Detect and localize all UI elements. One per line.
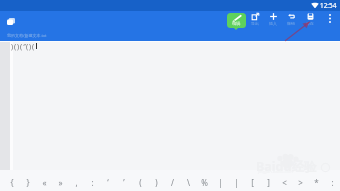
staticText: 我的文档/新建文本.txt <box>7 33 47 38</box>
staticText: ″ <box>23 42 26 52</box>
staticText: * <box>314 177 319 188</box>
button[interactable]: % <box>196 170 212 191</box>
staticText: | <box>218 177 223 188</box>
button[interactable]: | <box>212 170 228 191</box>
staticText: ( <box>14 42 17 52</box>
staticText: > <box>298 177 303 188</box>
staticText: ( <box>32 42 35 52</box>
staticText: « <box>42 177 47 188</box>
staticText: ( <box>20 42 23 52</box>
button[interactable]: » <box>52 170 68 191</box>
staticText: ) <box>155 177 158 188</box>
staticText: 导出 <box>251 21 259 26</box>
staticText: ) <box>11 42 14 52</box>
staticText: , <box>75 177 78 188</box>
button[interactable]: | <box>228 170 244 191</box>
staticText: ’ <box>123 177 125 188</box>
staticText: \ <box>187 177 190 188</box>
button[interactable]: Export <box>247 13 263 26</box>
staticText: : <box>91 177 94 188</box>
button[interactable]: < <box>276 170 292 191</box>
button[interactable]: ( <box>132 170 148 191</box>
staticText: } <box>26 177 30 188</box>
button[interactable]: « <box>36 170 52 191</box>
staticText: % <box>201 177 208 188</box>
button[interactable]: More options <box>324 11 336 25</box>
staticText: ( <box>139 177 142 188</box>
staticText: 插入 <box>269 21 277 26</box>
staticText: 撤销 <box>287 21 295 26</box>
button[interactable]: : <box>84 170 100 191</box>
staticText: | <box>234 177 239 188</box>
staticText: ( <box>26 42 29 52</box>
button[interactable]: ] <box>260 170 276 191</box>
button[interactable]: > <box>292 170 308 191</box>
button[interactable]: Save <box>302 13 318 26</box>
button[interactable]: , <box>68 170 84 191</box>
staticText: ‘ <box>107 177 109 188</box>
staticText: { <box>10 177 14 188</box>
button[interactable]: ) <box>148 170 164 191</box>
button[interactable]: ‘ <box>100 170 116 191</box>
staticText: : <box>331 177 334 188</box>
button[interactable]: } <box>20 170 36 191</box>
staticText: [ <box>251 177 254 188</box>
button[interactable]: : <box>324 170 340 191</box>
button[interactable]: * <box>308 170 324 191</box>
button[interactable]: Insert <box>265 13 281 26</box>
staticText: < <box>282 177 287 188</box>
button[interactable]: Edit mode <box>227 13 246 28</box>
button[interactable]: Undo <box>283 13 299 26</box>
staticText: ) <box>17 42 20 52</box>
button[interactable]: [ <box>244 170 260 191</box>
button[interactable]: \ <box>180 170 196 191</box>
staticText: ) <box>29 42 32 52</box>
button[interactable]: ’ <box>116 170 132 191</box>
staticText: 保存 <box>306 21 314 26</box>
staticText: 编辑 <box>232 21 241 26</box>
staticText: » <box>58 177 63 188</box>
button[interactable]: { <box>4 170 20 191</box>
staticText: / <box>171 177 174 188</box>
button[interactable]: / <box>164 170 180 191</box>
staticText: ] <box>267 177 270 188</box>
staticText: 12:54 <box>320 1 337 10</box>
